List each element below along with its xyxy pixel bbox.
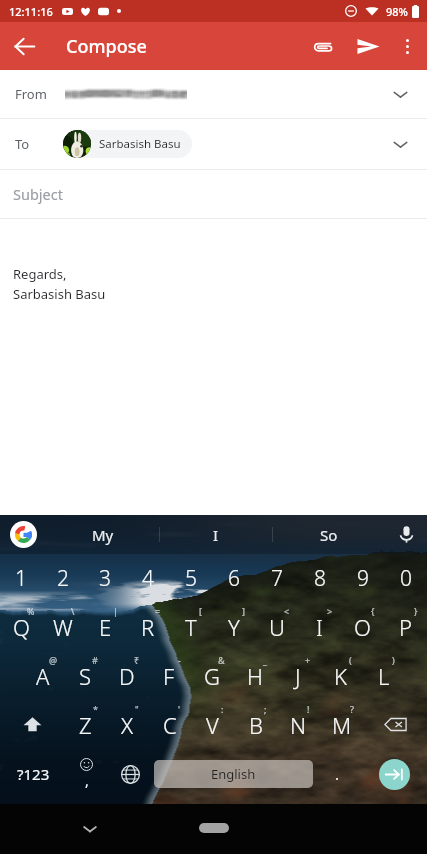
staticText: C bbox=[163, 710, 177, 740]
staticText: ?123 bbox=[17, 764, 50, 784]
button[interactable]: Switch language bbox=[107, 749, 154, 799]
button[interactable]: . bbox=[313, 749, 362, 799]
button[interactable]: 5 bbox=[169, 554, 212, 602]
staticText: 9 bbox=[357, 564, 369, 593]
staticText: O bbox=[354, 612, 371, 642]
staticText: Sarbasish Basu bbox=[13, 285, 106, 303]
staticText: { bbox=[371, 605, 375, 617]
button[interactable]: 6 bbox=[212, 554, 255, 602]
staticText: ] bbox=[242, 605, 245, 617]
button[interactable]: | bbox=[84, 602, 126, 651]
button[interactable]: \ bbox=[42, 602, 84, 651]
button[interactable]: More options bbox=[391, 22, 423, 70]
button[interactable]: Hide keyboard bbox=[76, 815, 104, 843]
staticText: Subject bbox=[13, 184, 63, 204]
button[interactable]: = bbox=[126, 602, 169, 651]
button[interactable]: Subject bbox=[0, 170, 427, 218]
button[interactable]: ? bbox=[320, 700, 363, 749]
button[interactable]: Enter bbox=[379, 759, 410, 790]
button[interactable]: Expand recipients bbox=[383, 77, 417, 111]
button[interactable]: - bbox=[148, 651, 190, 700]
button[interactable]: English bbox=[154, 760, 313, 788]
button[interactable]: 8 bbox=[298, 554, 341, 602]
button[interactable]: < bbox=[255, 602, 298, 651]
button[interactable]: Emoji bbox=[66, 749, 107, 799]
button[interactable]: + bbox=[276, 651, 319, 700]
staticText: 7 bbox=[271, 564, 283, 593]
staticText: + bbox=[305, 654, 311, 666]
button[interactable]: Sarbasish Basu bbox=[63, 130, 192, 158]
staticText: X bbox=[121, 710, 134, 740]
staticText: 12:11:16 bbox=[9, 4, 53, 19]
button[interactable]: * bbox=[64, 700, 106, 749]
button[interactable]: Attach file bbox=[301, 22, 345, 70]
button[interactable]: 0 bbox=[384, 554, 427, 602]
staticText: M bbox=[332, 710, 352, 740]
staticText: * bbox=[93, 703, 98, 715]
button[interactable]: From bbox=[0, 70, 427, 118]
button[interactable]: Shift bbox=[0, 700, 64, 749]
staticText: T bbox=[185, 612, 197, 642]
staticText: , bbox=[85, 771, 89, 790]
button[interactable]: & bbox=[190, 651, 233, 700]
staticText: 98% bbox=[386, 4, 408, 19]
button[interactable]: 2 bbox=[42, 554, 84, 602]
button[interactable]: I bbox=[160, 515, 272, 554]
button[interactable]: ] bbox=[212, 602, 255, 651]
button[interactable]: ! bbox=[277, 700, 320, 749]
staticText: E bbox=[99, 612, 112, 642]
button[interactable]: " bbox=[106, 700, 148, 749]
button[interactable]: [ bbox=[169, 602, 212, 651]
staticText: ₹ bbox=[134, 654, 140, 666]
staticText: Y bbox=[228, 612, 240, 642]
staticText: # bbox=[92, 654, 98, 666]
staticText: V bbox=[206, 710, 219, 740]
staticText: _ bbox=[263, 654, 267, 666]
button[interactable]: > bbox=[298, 602, 341, 651]
staticText: } bbox=[414, 605, 418, 617]
button[interactable]: # bbox=[64, 651, 106, 700]
button[interactable]: ) bbox=[362, 651, 405, 700]
button[interactable]: My bbox=[46, 515, 159, 554]
button[interactable]: So bbox=[273, 515, 385, 554]
button[interactable]: @ bbox=[22, 651, 64, 700]
button[interactable]: % bbox=[0, 602, 42, 651]
button[interactable]: { bbox=[341, 602, 384, 651]
button[interactable]: Backspace bbox=[363, 700, 427, 749]
button[interactable]: 3 bbox=[84, 554, 126, 602]
button[interactable]: ?123 bbox=[0, 749, 66, 799]
staticText: J bbox=[295, 661, 301, 691]
button[interactable]: _ bbox=[233, 651, 276, 700]
staticText: I bbox=[316, 612, 323, 642]
button[interactable]: Back bbox=[0, 22, 48, 70]
staticText: % bbox=[27, 605, 35, 617]
button[interactable]: ₹ bbox=[106, 651, 148, 700]
button[interactable]: ( bbox=[319, 651, 362, 700]
button[interactable]: Expand recipients bbox=[383, 127, 417, 161]
button[interactable]: Home bbox=[199, 823, 229, 833]
button[interactable]: 7 bbox=[255, 554, 298, 602]
button[interactable]: To bbox=[0, 119, 427, 169]
button[interactable]: Voice input bbox=[385, 515, 427, 554]
staticText: 3 bbox=[99, 564, 111, 593]
staticText: W bbox=[53, 612, 73, 642]
button[interactable]: Send bbox=[345, 22, 391, 70]
staticText: H bbox=[247, 661, 263, 691]
staticText: D bbox=[119, 661, 135, 691]
button[interactable]: Google search bbox=[0, 515, 46, 554]
staticText: ) bbox=[392, 654, 395, 666]
staticText: 8 bbox=[314, 564, 326, 593]
button[interactable]: ; bbox=[234, 700, 277, 749]
staticText: 0 bbox=[400, 564, 412, 593]
button[interactable]: 1 bbox=[0, 554, 42, 602]
staticText: > bbox=[327, 605, 333, 617]
staticText: English bbox=[211, 765, 256, 783]
staticText: - bbox=[178, 654, 181, 666]
button[interactable]: 4 bbox=[126, 554, 169, 602]
button[interactable]: : bbox=[191, 700, 234, 749]
staticText: Compose bbox=[66, 34, 147, 59]
button[interactable]: ' bbox=[148, 700, 191, 749]
button[interactable]: } bbox=[384, 602, 427, 651]
button[interactable]: 9 bbox=[341, 554, 384, 602]
staticText: ( bbox=[349, 654, 352, 666]
